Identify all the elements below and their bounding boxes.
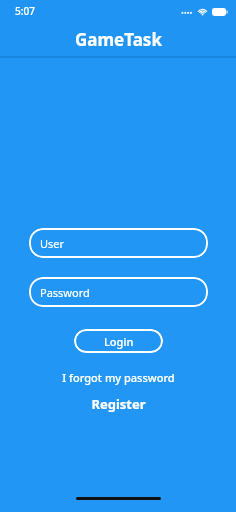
staticText: Login bbox=[104, 334, 134, 349]
staticText: Password bbox=[40, 285, 90, 300]
staticText: User bbox=[40, 236, 65, 251]
button[interactable]: Login bbox=[74, 329, 163, 353]
button[interactable]: User bbox=[29, 228, 208, 258]
staticText: 5:07 bbox=[15, 4, 35, 18]
staticText: GameTask bbox=[75, 28, 162, 51]
button[interactable]: Password bbox=[29, 277, 208, 307]
button[interactable]: I forgot my password bbox=[56, 369, 181, 386]
button[interactable]: Register bbox=[85, 394, 152, 414]
